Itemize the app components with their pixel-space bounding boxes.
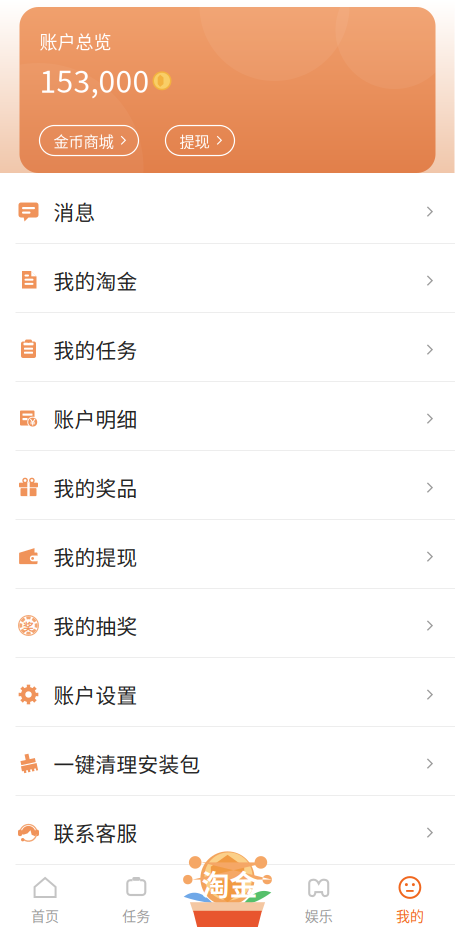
staticText: 我的奖品	[53, 472, 137, 502]
staticText: 首页	[31, 905, 59, 925]
staticText: 消息	[53, 196, 95, 226]
staticText: 一键清理安装包	[53, 748, 200, 778]
staticText: 我的	[396, 905, 424, 925]
button[interactable]: 我的淘金	[0, 244, 455, 313]
staticText: 153,000	[39, 58, 149, 101]
button[interactable]: 我的提现	[0, 520, 455, 589]
button[interactable]: 账户明细	[0, 382, 455, 451]
button[interactable]: 娱乐	[273, 865, 364, 927]
button[interactable]: 任务	[91, 865, 182, 927]
button[interactable]: 我的	[364, 865, 455, 927]
button[interactable]: 首页	[0, 865, 91, 927]
staticText: 娱乐	[305, 905, 333, 925]
staticText: 任务	[122, 905, 150, 925]
staticText: 我的抽奖	[53, 610, 137, 640]
button[interactable]: 提现	[165, 125, 234, 155]
staticText: 提现	[179, 129, 209, 152]
button[interactable]: 我的奖品	[0, 451, 455, 520]
staticText: 金币商城	[53, 129, 113, 152]
staticText: 我的淘金	[53, 265, 137, 295]
button[interactable]: 账户设置	[0, 658, 455, 727]
staticText: 奖	[23, 618, 34, 634]
button[interactable]: 消息	[0, 175, 455, 244]
button[interactable]: 淘金	[179, 843, 275, 927]
staticText: 账户总览	[39, 28, 111, 54]
staticText: 我的提现	[53, 541, 137, 571]
staticText: 账户明细	[53, 403, 137, 433]
staticText: 联系客服	[53, 817, 137, 847]
button[interactable]: 金币商城	[39, 125, 138, 155]
button[interactable]: 我的任务	[0, 313, 455, 382]
button[interactable]: 一键清理安装包	[0, 727, 455, 796]
staticText: 账户设置	[53, 679, 137, 709]
button[interactable]: 奖	[0, 589, 455, 658]
staticText: 我的任务	[53, 334, 137, 364]
staticText: 淘金	[201, 863, 257, 903]
button[interactable]: 联系客服	[0, 796, 455, 865]
